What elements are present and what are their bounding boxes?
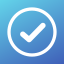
button[interactable]: Done: [0, 0, 64, 64]
